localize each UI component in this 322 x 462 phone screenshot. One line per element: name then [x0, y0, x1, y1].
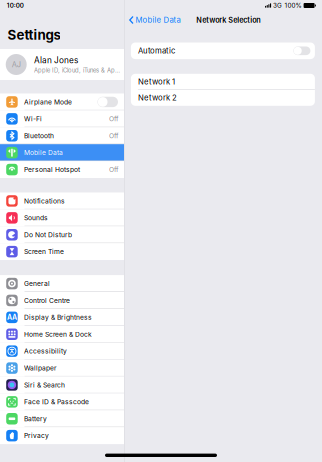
staticText: Off [109, 115, 118, 123]
button[interactable]: Bluetooth [0, 127, 124, 144]
button[interactable]: Siri & Search [0, 376, 124, 393]
staticText: Battery [24, 415, 47, 423]
staticText: Sounds [24, 214, 48, 222]
staticText: General [24, 279, 50, 288]
button[interactable]: Notifications [0, 192, 124, 209]
staticText: Mobile Data [24, 149, 63, 157]
staticText: 100% [285, 2, 302, 9]
staticText: AJ [12, 60, 21, 69]
staticText: Off [109, 132, 118, 140]
staticText: 10:00 [7, 2, 24, 9]
button[interactable]: General [0, 275, 124, 292]
button[interactable]: Wallpaper [0, 360, 124, 376]
button[interactable]: Network 2 [131, 90, 315, 106]
staticText: Home Screen & Dock [24, 330, 92, 338]
staticText: 3G [273, 2, 282, 9]
staticText: Bluetooth [24, 132, 54, 140]
staticText: Accessibility [24, 347, 67, 355]
button[interactable]: Accessibility [0, 343, 124, 360]
staticText: Network Selection [196, 16, 260, 24]
button[interactable]: Face ID & Passcode [0, 393, 124, 410]
button[interactable]: Personal Hotspot [0, 161, 124, 178]
button[interactable]: Screen Time [0, 243, 124, 260]
button[interactable]: Do Not Disturb [0, 226, 124, 243]
button[interactable]: Sounds [0, 209, 124, 226]
button[interactable]: Airplane Mode [0, 93, 124, 110]
button[interactable]: Home Screen & Dock [0, 326, 124, 343]
staticText: Wi-Fi [24, 115, 42, 123]
staticText: Display & Brightness [24, 313, 92, 321]
staticText: Off [109, 165, 118, 174]
staticText: Do Not Disturb [24, 231, 72, 239]
staticText: Control Centre [24, 296, 70, 304]
staticText: Screen Time [24, 248, 64, 256]
staticText: Airplane Mode [24, 98, 72, 106]
button[interactable]: Control Centre [0, 292, 124, 309]
button[interactable]: Automatic [131, 42, 315, 59]
staticText: Privacy [24, 432, 49, 440]
button[interactable]: Battery [0, 410, 124, 427]
button[interactable]: Privacy [0, 427, 124, 444]
button[interactable]: Mobile Data [125, 11, 184, 29]
staticText: Automatic [138, 46, 175, 55]
button[interactable]: AJ [0, 49, 124, 80]
staticText: Mobile Data [136, 15, 181, 25]
button[interactable]: AA [0, 309, 124, 326]
staticText: Settings [7, 27, 60, 43]
staticText: Personal Hotspot [24, 165, 80, 174]
button[interactable]: Wi-Fi [0, 110, 124, 127]
staticText: Alan Jones [34, 55, 78, 65]
staticText: Apple ID, iCloud, iTunes & App St… [34, 67, 121, 74]
staticText: Network 1 [138, 77, 175, 86]
button[interactable]: Mobile Data [0, 144, 124, 161]
staticText: AA [7, 313, 17, 322]
staticText: Notifications [24, 197, 65, 205]
staticText: Face ID & Passcode [24, 398, 89, 406]
staticText: Wallpaper [24, 364, 57, 372]
button[interactable]: Network 1 [131, 74, 315, 90]
staticText: Network 2 [138, 93, 177, 102]
staticText: Siri & Search [24, 381, 65, 389]
